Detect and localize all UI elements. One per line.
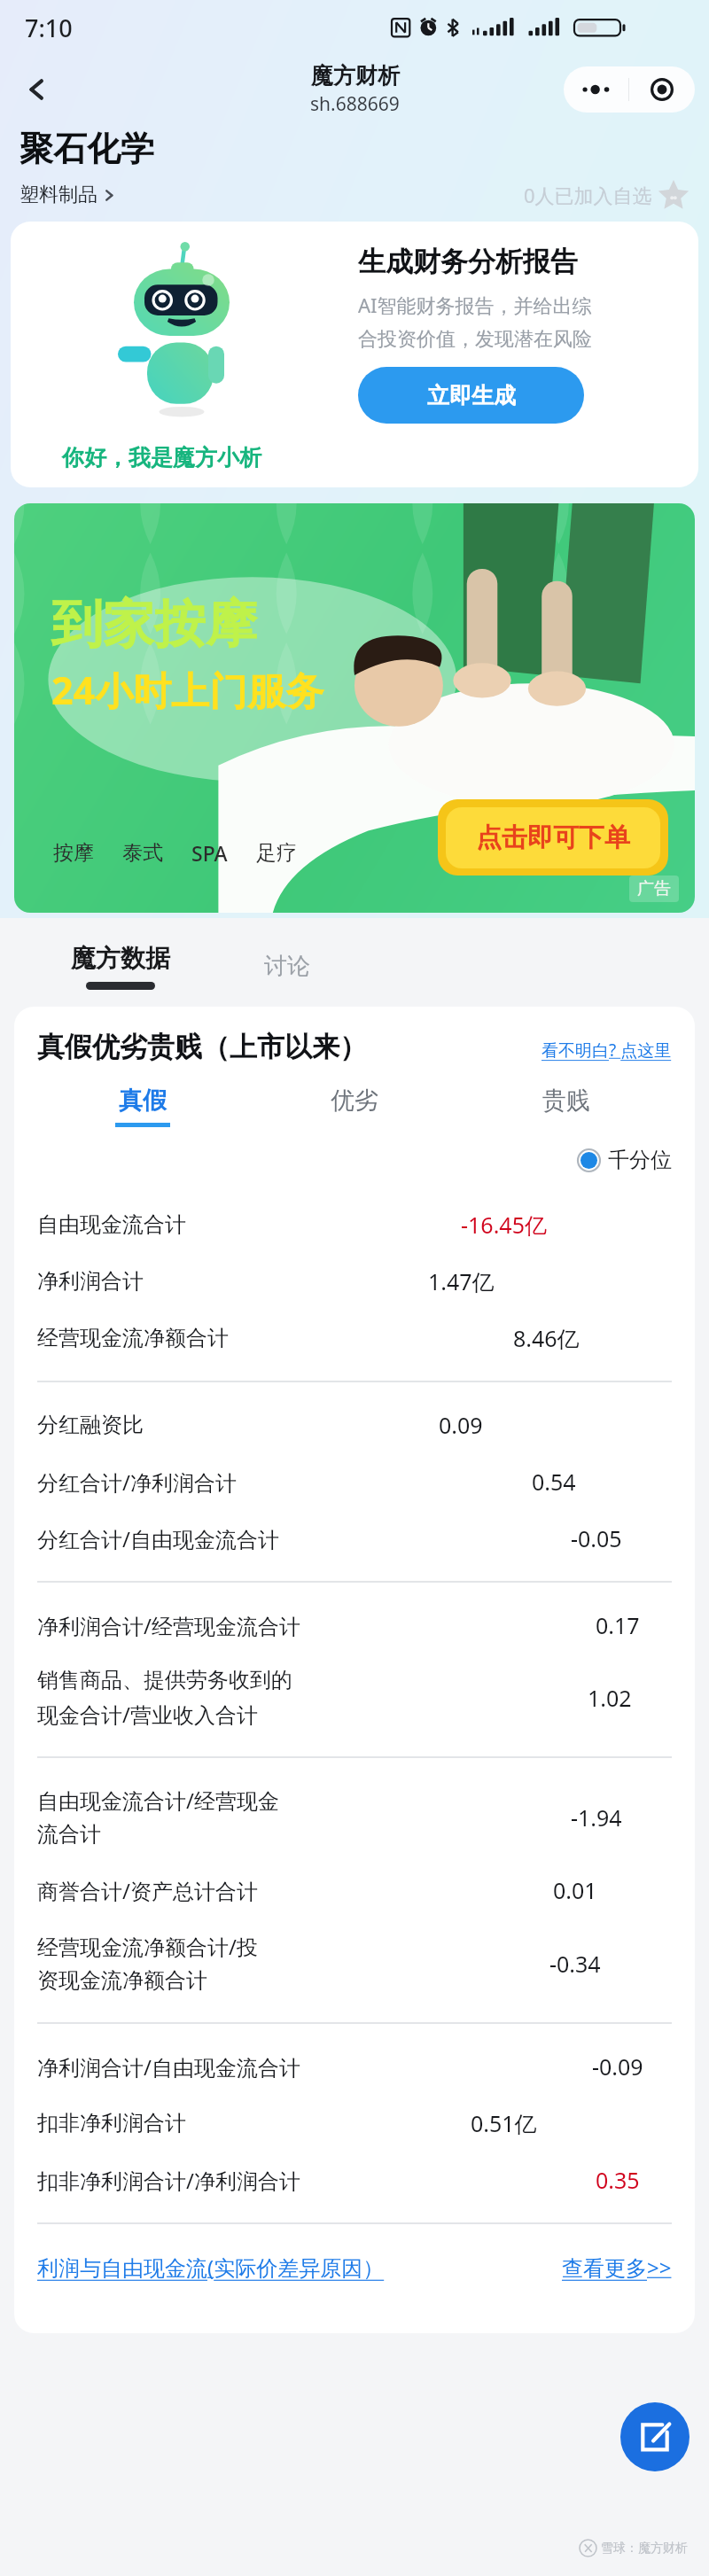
staticText: 7:10	[25, 12, 73, 44]
staticText: 生成财务分析报告	[358, 245, 578, 279]
staticText: 0.35	[596, 2165, 640, 2195]
button[interactable]: 讨论	[255, 941, 319, 992]
button[interactable]: 经营现金流净额合计/投 资现金流净额合计	[37, 1918, 672, 2008]
staticText: 真假优劣贵贱（上市以来）	[37, 1030, 367, 1064]
staticText: 魔方数据	[71, 943, 170, 974]
staticText: 立即生成	[427, 382, 516, 409]
button[interactable]: 0人已加入自选	[524, 179, 690, 211]
staticText: -16.45亿	[461, 1210, 547, 1240]
staticText: 雪球：魔方财析	[601, 2541, 688, 2557]
staticText: 1.02	[588, 1683, 632, 1713]
button[interactable]: 到家按摩	[14, 503, 695, 913]
button[interactable]: 返回	[12, 65, 62, 114]
staticText: 按摩	[53, 840, 94, 866]
staticText: 0人已加入自选	[524, 182, 652, 208]
staticText: -0.05	[571, 1523, 622, 1553]
staticText: sh.688669	[310, 91, 400, 117]
staticText: 足疗	[256, 840, 297, 866]
staticText: AI智能财务报告，并给出综 合投资价值，发现潜在风险	[358, 292, 592, 351]
button[interactable]: 分红合计/净利润合计	[37, 1453, 672, 1510]
staticText: 讨论	[264, 952, 310, 981]
button[interactable]: 扣非净利润合计/净利润合计	[37, 2152, 672, 2208]
button[interactable]: 查看更多>>	[562, 2253, 672, 2282]
button[interactable]: 更多	[564, 66, 628, 113]
button[interactable]: 净利润合计	[37, 1253, 672, 1310]
staticText: 泰式	[122, 840, 163, 866]
staticText: 到家按摩	[51, 592, 257, 657]
staticText: 贵贱	[542, 1086, 590, 1116]
button[interactable]: 经营现金流净额合计	[37, 1310, 672, 1366]
staticText: 8.46亿	[513, 1323, 580, 1353]
staticText: 分红合计/自由现金流合计	[37, 1524, 279, 1553]
button[interactable]: 商誉合计/资产总计合计	[37, 1862, 672, 1918]
staticText: 1.47亿	[428, 1266, 495, 1296]
staticText: 净利润合计/经营现金流合计	[37, 1611, 300, 1640]
staticText: 24小时上门服务	[51, 664, 324, 716]
button[interactable]: 扣非净利润合计	[37, 2095, 672, 2152]
staticText: 0.01	[553, 1875, 597, 1905]
staticText: 你好，我是魔方小析	[62, 444, 261, 471]
button[interactable]: 立即生成	[358, 367, 584, 424]
button[interactable]: 你好，我是魔方小析	[11, 222, 698, 487]
staticText: 0.09	[439, 1410, 483, 1440]
button[interactable]: 千分位	[37, 1147, 672, 1173]
staticText: 扣非净利润合计	[37, 2110, 186, 2136]
staticText: 分红合计/净利润合计	[37, 1467, 237, 1497]
staticText: 魔方财析	[311, 62, 400, 89]
button[interactable]: 写帖子	[620, 2402, 690, 2471]
staticText: 自由现金流合计	[37, 1211, 186, 1238]
button[interactable]: 优劣	[248, 1086, 460, 1127]
staticText: -1.94	[571, 1802, 622, 1833]
staticText: 塑料制品	[19, 183, 97, 207]
staticText: 净利润合计	[37, 1268, 144, 1295]
staticText: 千分位	[608, 1147, 672, 1173]
staticText: 0.54	[532, 1467, 576, 1497]
staticText: 销售商品、提供劳务收到的 现金合计/营业收入合计	[37, 1667, 292, 1729]
staticText: 点击即可下单	[476, 821, 630, 854]
button[interactable]: 关闭	[629, 66, 695, 113]
button[interactable]: 真假	[37, 1086, 248, 1127]
button[interactable]: 利润与自由现金流(实际价差异原因）	[37, 2253, 385, 2282]
button[interactable]: 看不明白? 点这里	[541, 1039, 672, 1064]
staticText: -0.34	[549, 1949, 601, 1979]
button[interactable]: 贵贱	[460, 1086, 672, 1127]
staticText: 经营现金流净额合计/投 资现金流净额合计	[37, 1932, 258, 1995]
staticText: -0.09	[592, 2051, 643, 2082]
staticText: 净利润合计/自由现金流合计	[37, 2052, 300, 2082]
staticText: 广告	[637, 878, 671, 899]
staticText: 商誉合计/资产总计合计	[37, 1876, 258, 1905]
staticText: 分红融资比	[37, 1412, 144, 1438]
staticText: 0.17	[596, 1610, 640, 1640]
button[interactable]: 自由现金流合计	[37, 1196, 672, 1253]
button[interactable]: 净利润合计/自由现金流合计	[37, 2038, 672, 2095]
button[interactable]: 点击即可下单	[438, 799, 668, 876]
staticText: 0.51亿	[471, 2108, 537, 2138]
staticText: 聚石化学	[19, 128, 154, 170]
button[interactable]: 净利润合计/经营现金流合计	[37, 1597, 672, 1654]
staticText: 经营现金流净额合计	[37, 1325, 229, 1351]
button[interactable]: 塑料制品	[19, 183, 115, 207]
button[interactable]: 分红融资比	[37, 1397, 672, 1453]
staticText: 优劣	[331, 1086, 378, 1116]
button[interactable]: 自由现金流合计/经营现金 流合计	[37, 1772, 672, 1862]
staticText: 扣非净利润合计/净利润合计	[37, 2166, 300, 2195]
staticText: 自由现金流合计/经营现金 流合计	[37, 1786, 279, 1848]
staticText: 真假	[119, 1086, 167, 1116]
button[interactable]: 销售商品、提供劳务收到的 现金合计/营业收入合计	[37, 1654, 672, 1742]
button[interactable]: 分红合计/自由现金流合计	[37, 1510, 672, 1567]
button[interactable]: 魔方数据	[62, 943, 179, 990]
staticText: SPA	[191, 839, 228, 867]
